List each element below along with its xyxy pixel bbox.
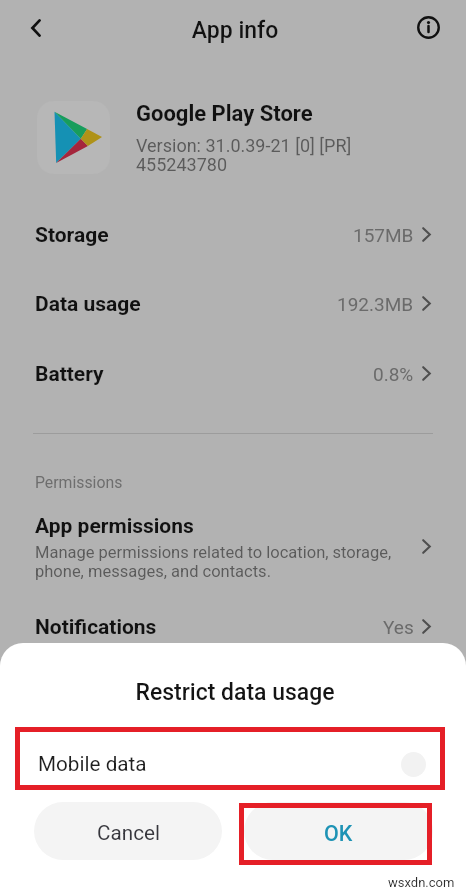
staticText: OK xyxy=(324,821,353,846)
button[interactable]: OK xyxy=(244,802,433,860)
staticText: 455243780 xyxy=(136,154,228,175)
staticText: Cancel xyxy=(97,821,160,845)
button[interactable]: Cancel xyxy=(34,802,222,860)
staticText: App info xyxy=(2,17,466,44)
staticText: Notifications xyxy=(35,615,157,640)
button[interactable]: App permissions xyxy=(0,511,466,595)
staticText: Storage xyxy=(35,223,109,248)
button[interactable]: Storage xyxy=(0,202,466,258)
staticText: wsxdn.com xyxy=(388,875,455,890)
button[interactable]: Battery xyxy=(0,341,466,397)
button[interactable]: Back xyxy=(14,6,58,50)
staticText: Mobile data xyxy=(38,752,401,776)
staticText: Permissions xyxy=(35,473,123,492)
staticText: Battery xyxy=(35,362,104,387)
button[interactable]: Data usage xyxy=(0,271,466,327)
staticText: Yes xyxy=(383,616,414,638)
staticText: Version: 31.0.39-21 [0] [PR] xyxy=(136,135,352,156)
staticText: 192.3MB xyxy=(337,293,414,315)
staticText: Data usage xyxy=(35,292,141,317)
staticText: App permissions xyxy=(35,514,194,539)
staticText: Restrict data usage xyxy=(2,679,466,706)
button[interactable]: Mobile data xyxy=(0,738,466,790)
staticText: 0.8% xyxy=(373,363,414,385)
button[interactable]: Notifications xyxy=(0,594,466,650)
staticText: 157MB xyxy=(353,224,414,246)
staticText: Google Play Store xyxy=(136,101,313,127)
button[interactable]: App details xyxy=(406,5,450,49)
staticText: phone, messages, and contacts. xyxy=(35,562,271,581)
staticText: Manage permissions related to location, … xyxy=(35,543,392,562)
